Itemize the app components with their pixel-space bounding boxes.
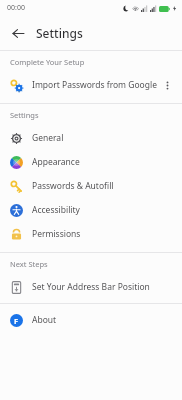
- staticText: Next Steps: [10, 259, 48, 269]
- button[interactable]: Permissions: [0, 222, 182, 246]
- staticText: About: [32, 314, 57, 326]
- staticText: Passwords & Autofill: [32, 180, 114, 192]
- staticText: 00:00: [7, 3, 25, 13]
- button[interactable]: Back: [6, 21, 30, 45]
- staticText: Import Passwords from Google: [32, 79, 157, 91]
- staticText: Settings: [36, 25, 83, 41]
- button[interactable]: F: [0, 308, 182, 332]
- button[interactable]: Set Your Address Bar Position: [0, 275, 182, 299]
- button[interactable]: General: [0, 126, 182, 150]
- button[interactable]: Appearance: [0, 150, 182, 174]
- staticText: F: [14, 316, 19, 326]
- staticText: Complete Your Setup: [10, 57, 85, 67]
- staticText: Appearance: [32, 156, 80, 168]
- staticText: Accessibility: [32, 204, 80, 216]
- button[interactable]: Import Passwords from Google: [0, 73, 182, 97]
- button[interactable]: Passwords & Autofill: [0, 174, 182, 198]
- button[interactable]: Accessibility: [0, 198, 182, 222]
- button[interactable]: More options: [158, 76, 176, 94]
- staticText: Set Your Address Bar Position: [32, 281, 150, 293]
- staticText: Permissions: [32, 228, 81, 240]
- staticText: General: [32, 132, 64, 144]
- staticText: Settings: [10, 110, 39, 120]
